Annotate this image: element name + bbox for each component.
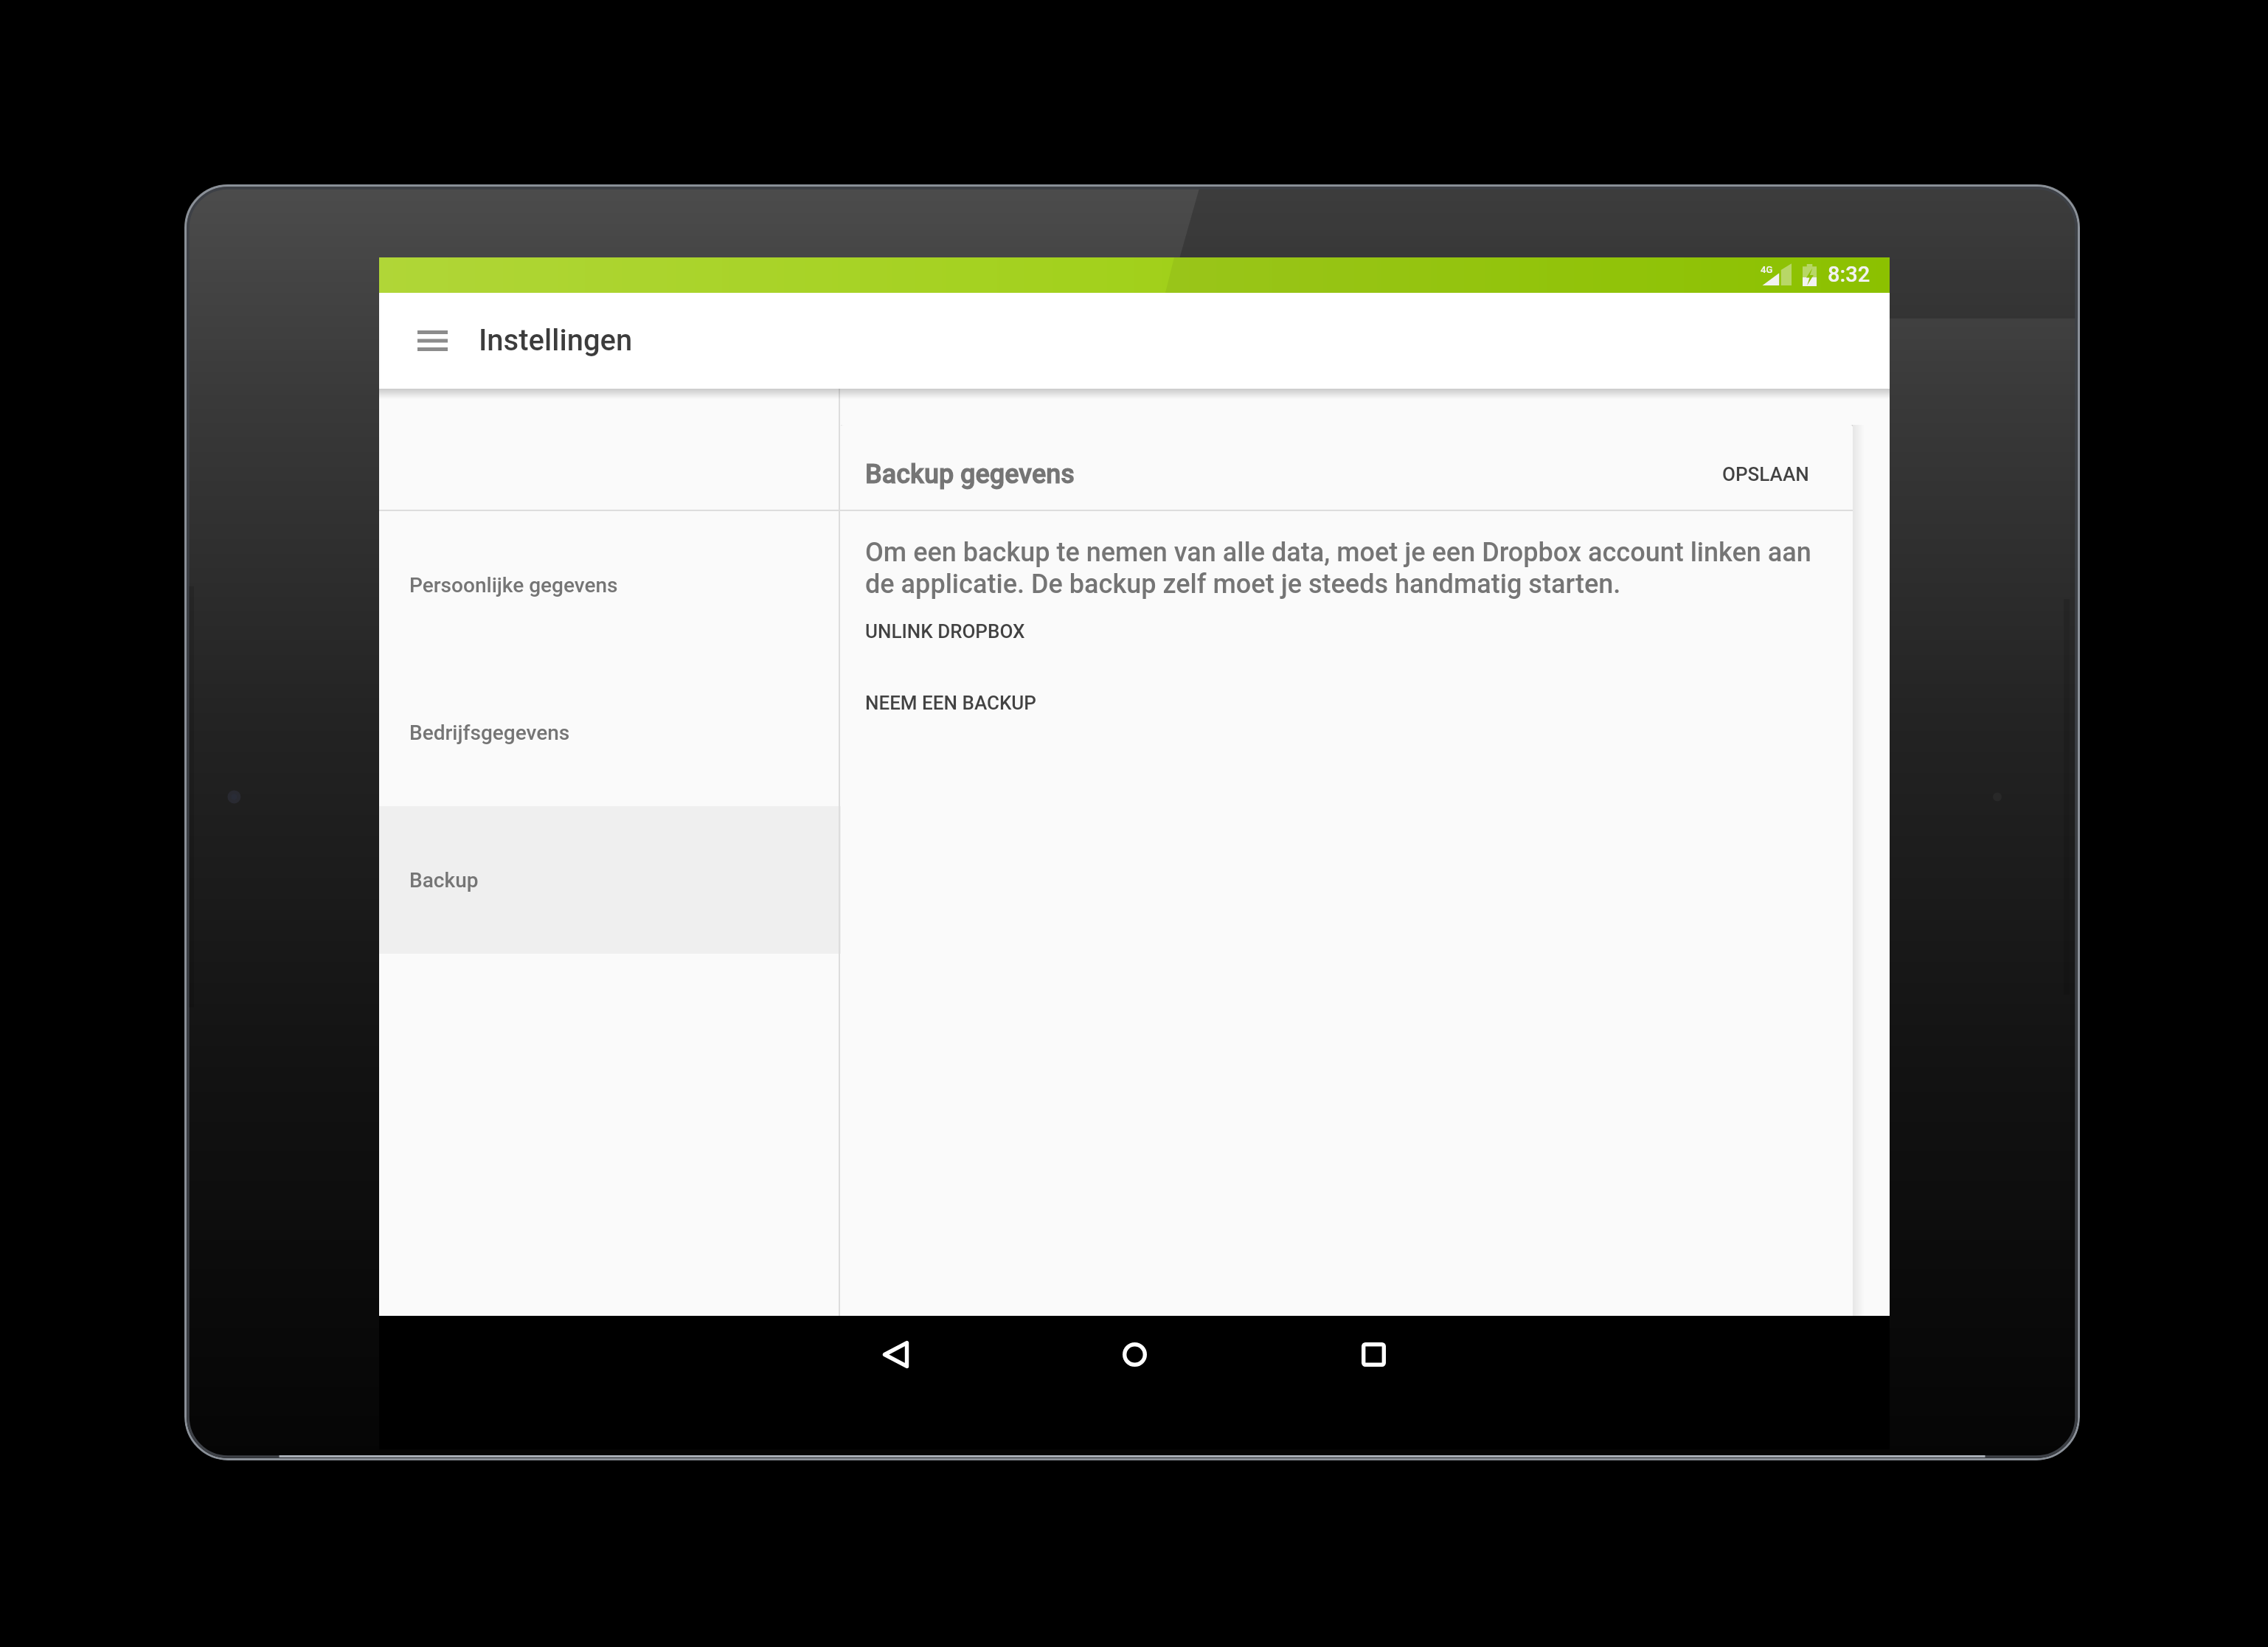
button[interactable]: Persoonlijke gegevens <box>379 511 841 659</box>
button[interactable]: OPSLAAN <box>1722 463 1809 485</box>
button[interactable]: Bedrijfsgegevens <box>379 659 841 806</box>
staticText: 4G <box>1761 264 1773 275</box>
button[interactable]: Backup <box>379 806 841 954</box>
staticText: UNLINK DROPBOX <box>865 620 1025 642</box>
button[interactable]: UNLINK DROPBOX <box>865 620 1025 642</box>
staticText: Bedrijfsgegevens <box>409 721 570 745</box>
staticText: Om een backup te nemen van alle data, mo… <box>865 537 1820 600</box>
button[interactable]: NEEM EEN BACKUP <box>865 692 1036 714</box>
staticText: Backup gegevens <box>865 459 1075 490</box>
button[interactable]: Home <box>1109 1329 1159 1379</box>
staticText: OPSLAAN <box>1722 463 1809 485</box>
button[interactable]: Recent apps <box>1348 1329 1398 1379</box>
button[interactable]: Back <box>870 1329 920 1379</box>
staticText: NEEM EEN BACKUP <box>865 692 1036 714</box>
staticText: Backup <box>409 868 479 892</box>
staticText: 8:32 <box>1828 262 1870 287</box>
staticText: Instellingen <box>479 323 633 358</box>
button[interactable]: Open navigation drawer <box>412 320 453 361</box>
staticText: Persoonlijke gegevens <box>409 573 618 597</box>
